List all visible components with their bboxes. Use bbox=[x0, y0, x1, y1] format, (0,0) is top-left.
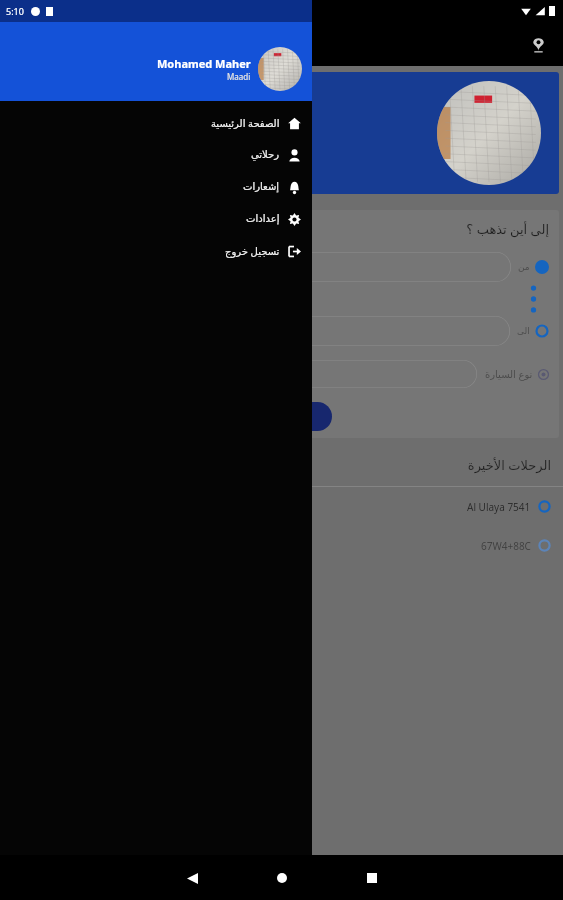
staticText: تسجيل خروج bbox=[225, 244, 280, 258]
staticText: نوع السيارة bbox=[485, 367, 533, 381]
button[interactable]: Mohamed Maher bbox=[157, 47, 302, 91]
button[interactable]: رحلاتي bbox=[0, 139, 312, 171]
button[interactable]: إشعارات bbox=[169, 855, 349, 900]
staticText: الى bbox=[517, 326, 530, 336]
button[interactable]: تسجيل خروج bbox=[0, 235, 312, 267]
button[interactable]: إعدادات bbox=[0, 203, 312, 235]
button[interactable] bbox=[14, 360, 477, 388]
staticText: Mohamed Maher bbox=[157, 56, 251, 71]
staticText: إشعارات bbox=[243, 181, 280, 193]
staticText: إلى أين تذهب ؟ bbox=[14, 220, 549, 238]
button[interactable]: Home bbox=[265, 861, 299, 895]
button[interactable]: Location bbox=[523, 29, 553, 59]
button[interactable]: Recents bbox=[355, 861, 389, 895]
staticText: رحلاتي bbox=[251, 149, 280, 161]
staticText: من bbox=[518, 262, 530, 272]
button[interactable] bbox=[14, 252, 511, 282]
staticText: الرحلات الأخيرة bbox=[0, 456, 551, 474]
staticText: Maadi bbox=[227, 71, 251, 82]
button[interactable]: إشعارات bbox=[0, 171, 312, 203]
button[interactable] bbox=[14, 316, 510, 346]
staticText: 5:10 bbox=[6, 5, 24, 17]
button[interactable]: Mohamed Maher bbox=[4, 72, 559, 194]
button[interactable]: Request ride bbox=[14, 402, 332, 431]
button[interactable]: 67W4+88C bbox=[0, 526, 563, 565]
button[interactable]: Al Ulaya 7541 bbox=[0, 487, 563, 526]
button[interactable]: Back bbox=[175, 861, 209, 895]
staticText: 67W4+88C bbox=[481, 539, 531, 553]
button[interactable]: الصفحة الرئيسية bbox=[0, 107, 312, 139]
button[interactable]: الصفحة الرئيسية bbox=[349, 855, 529, 900]
staticText: إعدادات bbox=[246, 213, 280, 225]
staticText: 01069101091 bbox=[34, 140, 381, 158]
staticText: Al Ulaya 7541 bbox=[467, 500, 531, 514]
staticText: الصفحة الرئيسية bbox=[211, 116, 280, 130]
